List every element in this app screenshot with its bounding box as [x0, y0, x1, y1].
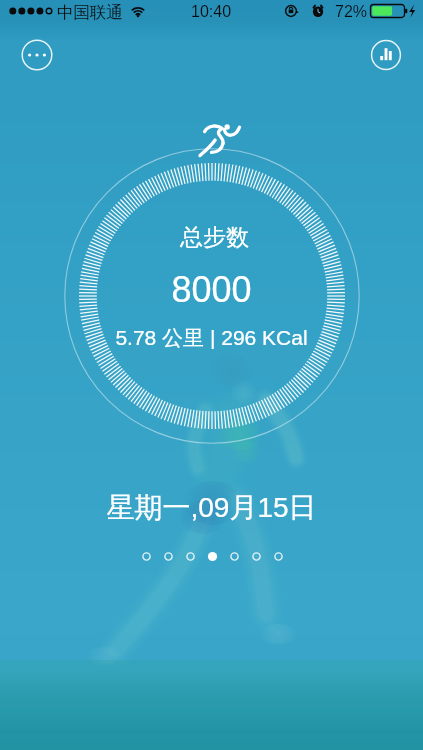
button[interactable] — [157, 545, 179, 567]
button[interactable]: Statistics — [366, 35, 406, 75]
staticText: 8000 — [0, 269, 423, 309]
staticText: 72% — [335, 3, 368, 21]
staticText: 中国联通 — [57, 2, 123, 23]
staticText: 5.78 公里 | 296 KCal — [0, 325, 423, 351]
button[interactable] — [179, 545, 201, 567]
button[interactable] — [245, 545, 267, 567]
staticText: 星期一,09月15日 — [0, 490, 423, 525]
button[interactable] — [135, 545, 157, 567]
staticText: 总步数 — [3, 223, 423, 252]
staticText: 10:40 — [191, 3, 232, 21]
button[interactable]: More options — [17, 35, 57, 75]
button[interactable] — [267, 545, 289, 567]
button[interactable] — [223, 545, 245, 567]
button[interactable] — [201, 545, 223, 567]
